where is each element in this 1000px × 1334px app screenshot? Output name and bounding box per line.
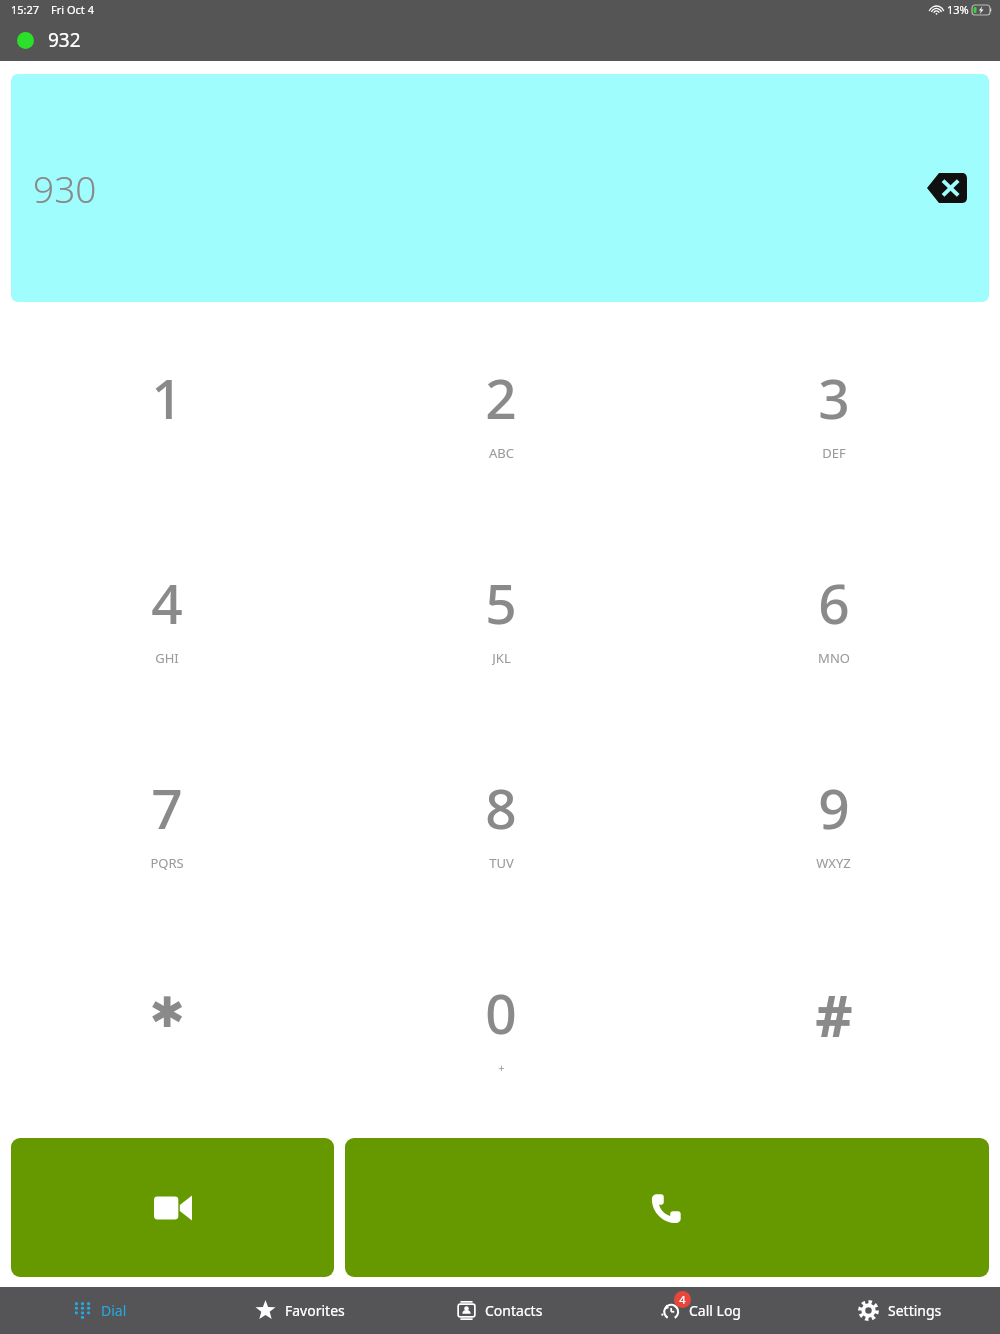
staticText: 5 xyxy=(485,565,517,639)
staticText: 4 xyxy=(679,1292,686,1307)
staticText: WXYZ xyxy=(816,854,851,870)
staticText: Call Log xyxy=(689,1301,741,1320)
staticText: JKL xyxy=(492,649,511,665)
staticText: TUV xyxy=(489,854,514,870)
staticText: 1 xyxy=(151,360,183,434)
staticText: MNO xyxy=(818,649,850,665)
button[interactable]: 930 xyxy=(11,74,989,302)
staticText: Settings xyxy=(888,1301,942,1320)
button[interactable]: ✱ xyxy=(0,922,334,1127)
button[interactable]: Favorites xyxy=(200,1287,400,1334)
staticText: Favorites xyxy=(285,1301,345,1320)
staticText: 7 xyxy=(151,770,183,844)
button[interactable]: 7 xyxy=(0,717,334,922)
staticText: 2 xyxy=(485,360,517,434)
button[interactable]: Settings xyxy=(800,1287,1000,1334)
button[interactable]: 0 xyxy=(334,922,667,1127)
staticText: + xyxy=(498,1060,505,1075)
button[interactable]: # xyxy=(667,922,1000,1127)
button[interactable]: Video call xyxy=(11,1138,334,1277)
staticText: DEF xyxy=(822,444,846,460)
staticText: 15:27 xyxy=(11,2,40,17)
button[interactable]: Backspace xyxy=(927,171,967,205)
button[interactable]: Call xyxy=(345,1138,989,1277)
staticText: 4 xyxy=(151,565,183,639)
staticText: 3 xyxy=(818,360,850,434)
button[interactable]: Dial xyxy=(0,1287,200,1334)
button[interactable]: 2 xyxy=(334,308,667,512)
button[interactable]: Contacts xyxy=(400,1287,600,1334)
staticText: GHI xyxy=(155,649,179,665)
staticText: 8 xyxy=(485,770,517,844)
staticText: Dial xyxy=(101,1301,127,1320)
staticText: PQRS xyxy=(150,854,184,870)
staticText: 0 xyxy=(485,975,517,1049)
staticText: Contacts xyxy=(485,1301,543,1320)
staticText: 930 xyxy=(33,163,97,213)
button[interactable]: 3 xyxy=(667,308,1000,512)
staticText: Fri Oct 4 xyxy=(51,2,94,17)
button[interactable]: 5 xyxy=(334,512,667,717)
staticText: # xyxy=(815,975,853,1049)
staticText: 13% xyxy=(947,2,969,17)
staticText: 6 xyxy=(818,565,850,639)
button[interactable]: 4 xyxy=(0,512,334,717)
button[interactable]: 9 xyxy=(667,717,1000,922)
staticText: 932 xyxy=(48,27,81,53)
staticText: ABC xyxy=(489,444,514,460)
staticText: ✱ xyxy=(149,988,185,1037)
button[interactable]: 8 xyxy=(334,717,667,922)
button[interactable]: 4 xyxy=(600,1287,800,1334)
button[interactable]: 1 xyxy=(0,308,334,512)
staticText: 9 xyxy=(818,770,850,844)
button[interactable]: 6 xyxy=(667,512,1000,717)
